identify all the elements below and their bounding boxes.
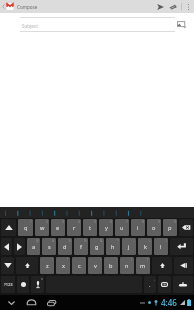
button[interactable]: Attach file <box>167 1 179 13</box>
staticText: f <box>80 243 82 251</box>
button[interactable]: j <box>122 238 136 255</box>
button[interactable]: n <box>120 257 134 274</box>
staticText: ; <box>116 258 117 262</box>
staticText: Subject <box>22 23 38 29</box>
staticText: k <box>144 243 147 251</box>
staticText: e <box>56 224 60 232</box>
staticText: c <box>78 262 81 270</box>
staticText: - <box>133 239 135 243</box>
button[interactable]: Navigate up <box>0 0 14 13</box>
staticText: 6 <box>110 220 112 224</box>
staticText: ? <box>147 258 149 262</box>
button[interactable]: y <box>99 219 113 236</box>
button[interactable]: mic <box>31 276 44 293</box>
button[interactable]: shift <box>16 257 38 274</box>
staticText: 9 <box>158 220 160 224</box>
button[interactable]: . <box>144 276 156 293</box>
button[interactable]: h <box>106 238 120 255</box>
button[interactable]: a <box>27 238 40 255</box>
staticText: d <box>63 243 67 251</box>
button[interactable]: e <box>51 219 65 236</box>
button[interactable]: ?123 <box>1 276 15 293</box>
button[interactable]: globe <box>17 276 29 293</box>
staticText: # <box>52 239 55 243</box>
staticText: y <box>105 224 108 232</box>
button[interactable]: q <box>18 219 33 236</box>
button[interactable]: right <box>14 238 25 255</box>
button[interactable]: kbd <box>158 276 171 293</box>
staticText: 0 <box>174 220 176 224</box>
button[interactable]: i <box>131 219 145 236</box>
staticText: n <box>125 262 129 270</box>
staticText: w <box>40 224 45 232</box>
staticText: v <box>94 262 97 270</box>
staticText: 8 <box>142 220 144 224</box>
button[interactable]: left <box>1 238 12 255</box>
staticText: b <box>109 262 113 270</box>
staticText: x <box>62 262 65 270</box>
button[interactable]: kbd2 <box>173 276 193 293</box>
button[interactable]: k <box>138 238 152 255</box>
button[interactable]: o <box>147 219 161 236</box>
staticText: 2 <box>46 220 48 224</box>
button[interactable]: prev <box>174 257 193 274</box>
button[interactable]: up <box>1 219 16 236</box>
button[interactable]: f <box>74 238 88 255</box>
staticText: % <box>84 239 87 243</box>
button[interactable]: bksp <box>179 219 193 236</box>
staticText: * <box>117 239 119 243</box>
staticText: a <box>32 243 36 251</box>
button[interactable]: m <box>136 257 150 274</box>
button[interactable]: enter <box>170 238 193 255</box>
staticText: $ <box>69 239 71 243</box>
staticText: 1 <box>30 220 32 224</box>
button[interactable]: z <box>40 257 54 274</box>
button[interactable]: t <box>83 219 97 236</box>
button[interactable]: Send <box>154 0 167 13</box>
staticText: ' <box>84 258 85 262</box>
staticText: 5 <box>94 220 96 224</box>
button[interactable]: g <box>90 238 104 255</box>
button[interactable]: v <box>88 257 102 274</box>
staticText: l <box>160 243 162 251</box>
button[interactable]: p <box>163 219 177 236</box>
button[interactable]: s <box>42 238 56 255</box>
button[interactable]: More options <box>183 0 193 13</box>
staticText: i <box>137 224 139 232</box>
staticText: t <box>89 224 92 232</box>
staticText: Compose <box>17 4 38 10</box>
staticText: z <box>46 262 49 270</box>
button[interactable]: Suggestions <box>0 207 194 218</box>
button[interactable]: Home <box>23 295 40 310</box>
staticText: u <box>120 224 124 232</box>
button[interactable]: c <box>72 257 86 274</box>
staticText: ( <box>166 239 167 243</box>
button[interactable]: l <box>154 238 168 255</box>
button[interactable]: down <box>1 257 14 274</box>
button[interactable]: w <box>35 219 49 236</box>
staticText: : <box>100 258 101 262</box>
staticText: / <box>131 258 133 262</box>
button[interactable]: Insert photo <box>174 17 188 31</box>
staticText: g <box>95 243 99 251</box>
staticText: j <box>128 243 130 251</box>
button[interactable]: Recent apps <box>43 295 60 310</box>
staticText: " <box>67 258 69 262</box>
staticText: s <box>48 243 51 251</box>
staticText: q <box>24 224 28 232</box>
staticText: @ <box>36 239 39 243</box>
staticText: 4 <box>78 220 80 224</box>
button[interactable]: b <box>104 257 118 274</box>
button[interactable]: r <box>67 219 81 236</box>
staticText: 4:46 <box>161 297 177 308</box>
staticText: p <box>168 224 172 232</box>
button[interactable]: Hide keyboard <box>3 295 20 310</box>
staticText: o <box>152 224 156 232</box>
button[interactable]: x <box>56 257 70 274</box>
staticText: + <box>149 239 151 243</box>
button[interactable]: u <box>115 219 129 236</box>
button[interactable]: shift <box>152 257 172 274</box>
staticText: o <box>41 277 43 281</box>
button[interactable]: d <box>58 238 72 255</box>
